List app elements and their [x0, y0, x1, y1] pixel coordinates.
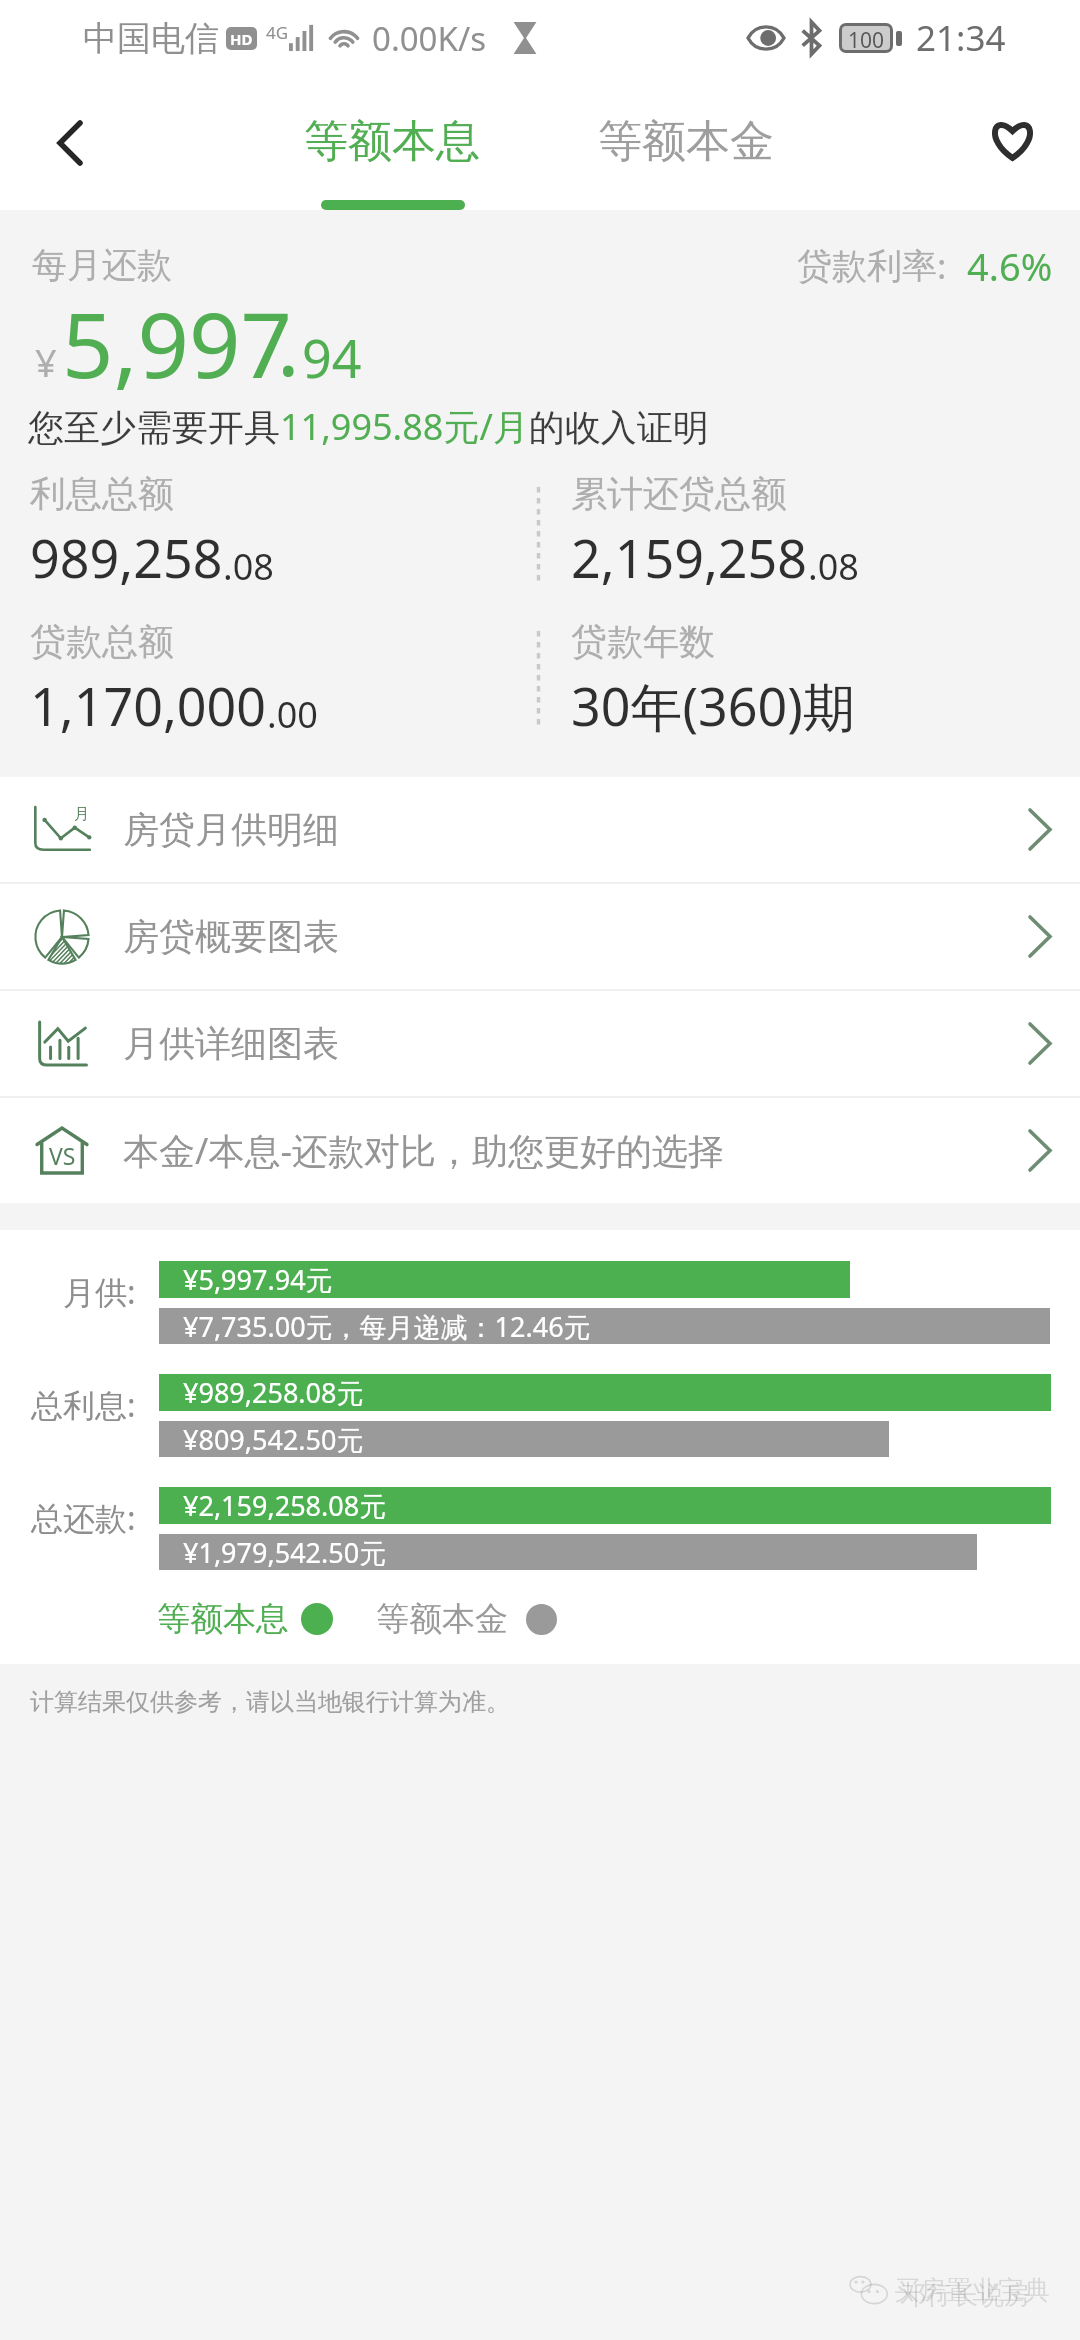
- staticText: 您至少需要开具11,995.88元/月的收入证明: [28, 402, 709, 451]
- button[interactable]: 等额本金: [578, 76, 794, 210]
- staticText: ¥1,979,542.50元: [183, 1534, 387, 1570]
- staticText: 月: [74, 805, 89, 824]
- staticText: 本金/本息-还款对比，助您更好的选择: [123, 1126, 724, 1175]
- staticText: 等额本息: [304, 114, 480, 169]
- staticText: 贷款年数: [571, 619, 715, 664]
- staticText: 邓行长说房: [900, 2279, 1030, 2312]
- staticText: 计算结果仅供参考，请以当地银行计算为准。: [30, 1687, 510, 1717]
- staticText: 0.00K/s: [372, 16, 486, 61]
- staticText: 100: [848, 26, 885, 50]
- staticText: .00: [267, 690, 318, 739]
- staticText: 累计还贷总额: [571, 471, 787, 516]
- button[interactable]: 收藏: [974, 102, 1050, 178]
- staticText: 21:34: [916, 14, 1006, 62]
- staticText: 总利息:: [31, 1383, 136, 1427]
- staticText: ¥: [35, 336, 57, 388]
- button[interactable]: 等额本息: [284, 76, 500, 210]
- staticText: 4G: [266, 21, 289, 44]
- button[interactable]: 房贷概要图表: [0, 884, 1080, 989]
- button[interactable]: 等额本金: [376, 1598, 557, 1640]
- staticText: 每月还款: [32, 243, 172, 287]
- button[interactable]: 等额本息: [157, 1598, 333, 1640]
- staticText: 总还款:: [31, 1496, 136, 1540]
- staticText: 利息总额: [30, 471, 174, 516]
- staticText: 等额本息: [157, 1598, 289, 1640]
- staticText: 房贷概要图表: [123, 914, 339, 959]
- staticText: ¥2,159,258.08元: [183, 1487, 387, 1524]
- staticText: 2,159,258: [571, 522, 808, 593]
- button[interactable]: VS: [0, 1098, 1080, 1203]
- staticText: VS: [49, 1140, 76, 1171]
- staticText: 94: [302, 322, 362, 393]
- staticText: ¥989,258.08元: [183, 1374, 364, 1411]
- button[interactable]: 月供详细图表: [0, 991, 1080, 1096]
- staticText: 中国电信: [83, 17, 219, 60]
- staticText: 989,258: [30, 522, 223, 593]
- button[interactable]: 月: [0, 777, 1080, 882]
- staticText: 月供详细图表: [123, 1021, 339, 1066]
- staticText: 5,997: [62, 282, 293, 405]
- staticText: .08: [808, 542, 859, 591]
- staticText: ¥5,997.94元: [183, 1261, 333, 1298]
- staticText: .08: [223, 542, 274, 591]
- staticText: 1,170,000: [30, 670, 267, 741]
- button[interactable]: 返回: [34, 107, 106, 179]
- staticText: .: [277, 286, 300, 400]
- staticText: 月供:: [63, 1270, 136, 1314]
- staticText: 房贷月供明细: [123, 807, 339, 852]
- staticText: 等额本金: [598, 114, 774, 169]
- staticText: ¥7,735.00元，每月递减：12.46元: [183, 1308, 591, 1344]
- staticText: HD: [230, 29, 253, 49]
- staticText: 4.6%: [967, 240, 1053, 292]
- staticText: ¥809,542.50元: [183, 1421, 364, 1457]
- staticText: 贷款利率: [797, 244, 937, 288]
- staticText: 等额本金: [376, 1598, 508, 1640]
- staticText: 30年(360)期: [571, 670, 855, 741]
- staticText: :: [937, 242, 947, 290]
- staticText: 买房置业宝典: [894, 2274, 1050, 2307]
- staticText: 贷款总额: [30, 619, 174, 664]
